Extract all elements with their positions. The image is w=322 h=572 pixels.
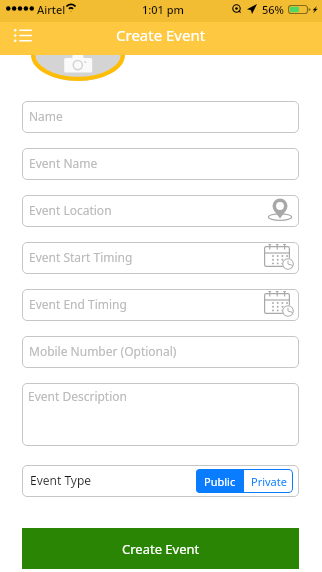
staticText: Event Type <box>30 472 92 488</box>
staticText: Name <box>29 108 63 124</box>
button[interactable]: Event Location <box>22 195 299 227</box>
staticText: Create Event <box>122 540 200 558</box>
staticText: Event Description <box>28 388 127 404</box>
staticText: Airtel <box>37 2 66 17</box>
button[interactable]: Name <box>22 101 299 133</box>
button[interactable]: Add event photo <box>31 28 125 81</box>
button[interactable]: Event Name <box>22 148 299 180</box>
button[interactable]: Public <box>196 469 244 493</box>
button[interactable]: Event End Timing <box>22 289 299 321</box>
button[interactable]: Event Start Timing <box>22 242 299 274</box>
button[interactable]: Menu <box>10 23 36 47</box>
staticText: Public <box>204 474 236 489</box>
staticText: 56% <box>262 2 284 17</box>
button[interactable]: Private <box>244 469 293 493</box>
button[interactable]: Create Event <box>22 528 299 569</box>
button[interactable]: Mobile Number (Optional) <box>22 336 299 368</box>
button[interactable]: Event Description <box>22 383 299 446</box>
staticText: Event Location <box>29 202 112 218</box>
staticText: Mobile Number (Optional) <box>29 343 177 359</box>
staticText: Private <box>251 474 287 489</box>
staticText: Event Name <box>29 155 98 171</box>
staticText: Event Start Timing <box>29 249 133 265</box>
staticText: 1:01 pm <box>142 2 184 17</box>
staticText: Event End Timing <box>29 296 127 312</box>
staticText: Create Event <box>116 25 206 45</box>
